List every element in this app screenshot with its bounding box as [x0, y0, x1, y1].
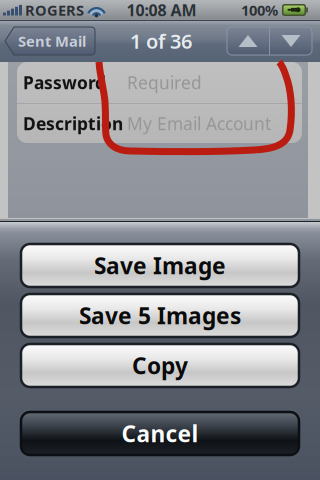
button[interactable]: Next message	[270, 27, 312, 55]
staticText: ROGERS	[25, 0, 84, 20]
staticText: Password	[23, 71, 106, 94]
staticText: Save 5 Images	[79, 300, 241, 330]
staticText: Description	[23, 112, 123, 135]
button[interactable]: Previous message	[227, 27, 269, 55]
staticText: Save Image	[94, 250, 226, 280]
staticText: Cancel	[121, 418, 198, 448]
staticText: Sent Mail	[18, 31, 86, 51]
staticText: 10:08 AM	[126, 0, 196, 21]
staticText: Required	[127, 71, 202, 94]
button[interactable]: Save 5 Images	[21, 294, 299, 337]
staticText: My Email Account	[127, 112, 271, 135]
staticText: Copy	[132, 350, 188, 380]
staticText: 100%	[241, 0, 278, 20]
button[interactable]: Copy	[21, 344, 299, 387]
staticText: 1 of 36	[130, 28, 192, 54]
button[interactable]: Save Image	[21, 244, 299, 287]
button[interactable]: Sent Mail	[0, 27, 95, 55]
button[interactable]: Cancel	[21, 412, 299, 455]
